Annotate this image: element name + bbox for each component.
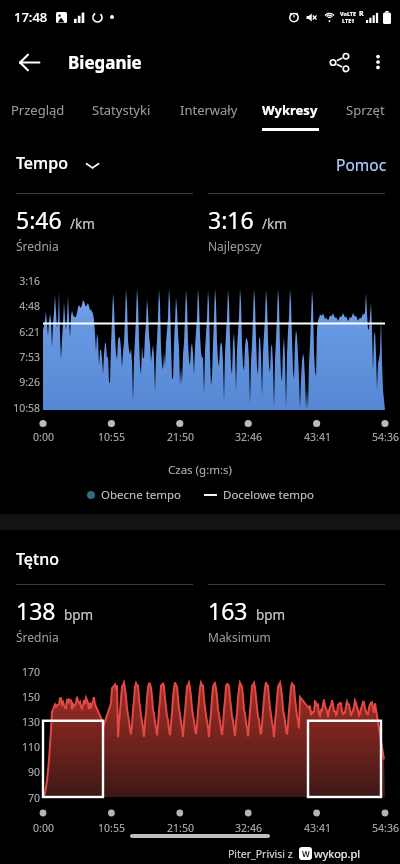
staticText: 32:46 [235, 430, 262, 444]
staticText: Interwały [180, 101, 238, 119]
button[interactable]: Back [6, 39, 52, 85]
staticText: 43:41 [304, 430, 331, 444]
button[interactable]: Tempo [16, 152, 99, 174]
staticText: 9:26 [19, 375, 40, 389]
staticText: Statystyki [92, 101, 151, 119]
staticText: W [302, 848, 310, 859]
staticText: Średnia [16, 629, 59, 645]
staticText: Bieganie [68, 51, 142, 74]
button[interactable]: Pomoc [332, 150, 391, 179]
staticText: bpm [256, 606, 286, 624]
staticText: 130 [21, 715, 40, 729]
button[interactable]: Interwały [174, 92, 244, 128]
staticText: Najlepszy [208, 238, 262, 254]
staticText: 32:46 [235, 821, 262, 835]
staticText: 43:41 [304, 821, 331, 835]
staticText: Piter_Privisi z [228, 847, 293, 861]
staticText: 90 [27, 765, 40, 779]
staticText: 17:48 [14, 8, 48, 26]
staticText: Obecne tempo [101, 487, 182, 503]
staticText: /km [262, 215, 287, 233]
staticText: 10:55 [98, 821, 125, 835]
staticText: 3:16 [208, 204, 254, 235]
staticText: 150 [21, 690, 40, 704]
button[interactable]: More options [358, 42, 398, 82]
staticText: 110 [21, 740, 40, 754]
staticText: Wykresy [262, 101, 318, 119]
staticText: 21:50 [167, 821, 194, 835]
staticText: 163 [208, 595, 248, 626]
staticText: 170 [21, 665, 40, 679]
button[interactable]: Statystyki [83, 92, 160, 128]
staticText: /km [70, 215, 95, 233]
staticText: Średnia [16, 238, 59, 254]
staticText: 5:46 [16, 204, 62, 235]
staticText: VoLTE [340, 10, 357, 17]
staticText: LTE1 [342, 17, 355, 24]
staticText: Pomoc [336, 154, 387, 175]
staticText: 4:48 [19, 299, 40, 313]
staticText: Przegląd [11, 101, 65, 119]
staticText: Tętno [16, 548, 59, 570]
button[interactable]: Share [318, 41, 360, 83]
staticText: 6:21 [19, 325, 40, 339]
staticText: Maksimum [208, 629, 271, 645]
staticText: 10:55 [98, 430, 125, 444]
button[interactable]: Przegląd [6, 92, 69, 128]
staticText: Sprzęt [346, 101, 385, 119]
staticText: 70 [27, 791, 40, 805]
staticText: 10:58 [13, 401, 40, 415]
staticText: 21:50 [167, 430, 194, 444]
staticText: 0:00 [33, 821, 54, 835]
staticText: wykop.pl [314, 846, 361, 861]
staticText: Tempo [16, 152, 68, 174]
button[interactable]: Sprzęt [341, 92, 390, 128]
staticText: 54:36 [372, 430, 399, 444]
staticText: 0:00 [33, 430, 54, 444]
staticText: 3:16 [19, 274, 40, 288]
staticText: R [359, 9, 364, 19]
staticText: bpm [64, 606, 94, 624]
staticText: 7:53 [19, 350, 40, 364]
staticText: 138 [16, 595, 56, 626]
staticText: Docelowe tempo [223, 487, 314, 503]
staticText: Czas (g:m:s) [168, 462, 233, 478]
button[interactable]: Wykresy [262, 92, 318, 128]
staticText: 54:36 [372, 821, 399, 835]
